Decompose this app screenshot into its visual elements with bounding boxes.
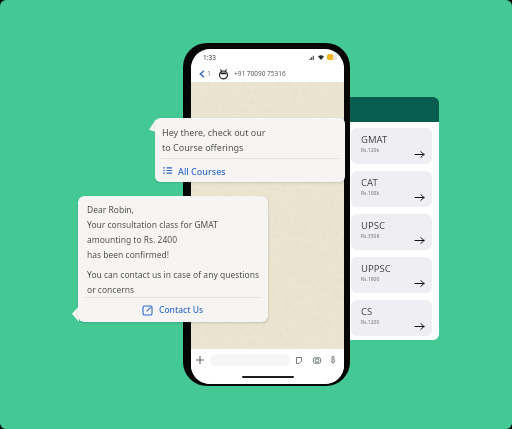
other: Sticker <box>295 357 302 364</box>
staticText: 1:33 <box>203 53 216 62</box>
staticText: to Course offerings <box>162 141 244 153</box>
staticText: 1 <box>207 69 212 79</box>
button[interactable]: GMAT <box>351 128 432 164</box>
other: Voice message <box>330 356 336 364</box>
button[interactable]: Contact Us <box>78 298 268 322</box>
button[interactable]: UPSC <box>351 214 432 250</box>
staticText: has been confirmed! <box>87 249 169 261</box>
staticText: All Courses <box>178 165 226 177</box>
staticText: Rs.1200 <box>361 319 380 326</box>
staticText: amounting to Rs. 2400 <box>87 234 178 246</box>
staticText: Your consultation class for GMAT <box>87 219 218 231</box>
button[interactable]: UPPSC <box>351 257 432 293</box>
other: Camera <box>313 357 321 364</box>
staticText: CAT <box>361 176 378 189</box>
staticText: Rs.1800 <box>361 276 380 283</box>
staticText: or concerns <box>87 284 135 296</box>
staticText: Rs.350K <box>361 233 380 240</box>
button[interactable]: All Courses <box>155 159 345 182</box>
staticText: You can contact us in case of any questi… <box>87 269 260 281</box>
staticText: CS <box>361 305 373 318</box>
staticText: Rs.100k <box>361 190 380 197</box>
staticText: Contact Us <box>159 304 204 316</box>
staticText: +91 70090 75316 <box>234 69 286 78</box>
button[interactable]: CAT <box>351 171 432 207</box>
staticText: GMAT <box>361 133 388 146</box>
staticText: UPSC <box>361 219 385 232</box>
other: Attach <box>196 356 204 364</box>
staticText: Hey there, check out our <box>162 126 266 138</box>
staticText: Dear Robin, <box>87 204 134 216</box>
other: Back <box>197 69 207 79</box>
staticText: Rs.120k <box>361 147 380 154</box>
staticText: UPPSC <box>361 262 391 275</box>
button[interactable]: CS <box>351 300 432 336</box>
